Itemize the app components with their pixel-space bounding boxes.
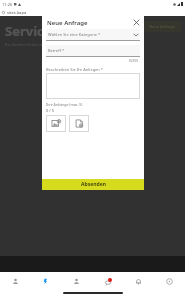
staticText: Ihre Anhänge (max. 5) (46, 102, 83, 107)
staticText: sites.kapa (7, 10, 27, 15)
button[interactable]: Betreff * (46, 45, 140, 63)
staticText: Beschreiben Sie Ihr Anliegen * (46, 67, 104, 72)
button[interactable]: Activity (30, 272, 61, 291)
staticText: Service C (5, 22, 64, 40)
staticText: 11:26 (2, 2, 13, 7)
staticText: Betreff * (48, 48, 65, 53)
staticText: Absenden (81, 181, 106, 188)
button[interactable]: Absenden (42, 179, 144, 190)
button[interactable]: More (154, 272, 185, 291)
button[interactable]: Add file (69, 115, 89, 132)
button[interactable]: Contacts (61, 272, 92, 291)
button[interactable]: Person (0, 272, 30, 291)
staticText: 0 / 5 (46, 108, 55, 113)
staticText: Wählen Sie eine Kategorie * (48, 32, 101, 37)
button[interactable] (0, 16, 185, 256)
button[interactable]: Close (132, 18, 141, 27)
staticText: Neue Anfrage (149, 24, 175, 29)
button[interactable]: Beschreiben Sie Ihr Anliegen * (46, 67, 140, 99)
staticText: 0/255 (129, 58, 139, 63)
staticText: Neue Anfrage (47, 19, 88, 27)
staticText: Ihr direkter Draht zu uns (5, 42, 52, 47)
button[interactable]: Address bar (2, 10, 27, 15)
button[interactable]: Messages (92, 272, 123, 291)
button[interactable]: Wählen Sie eine Kategorie * (46, 29, 140, 41)
button[interactable]: Add photo (46, 115, 66, 132)
button[interactable]: Notifications (123, 272, 154, 291)
button[interactable]: Neue Anfrage (143, 21, 181, 32)
